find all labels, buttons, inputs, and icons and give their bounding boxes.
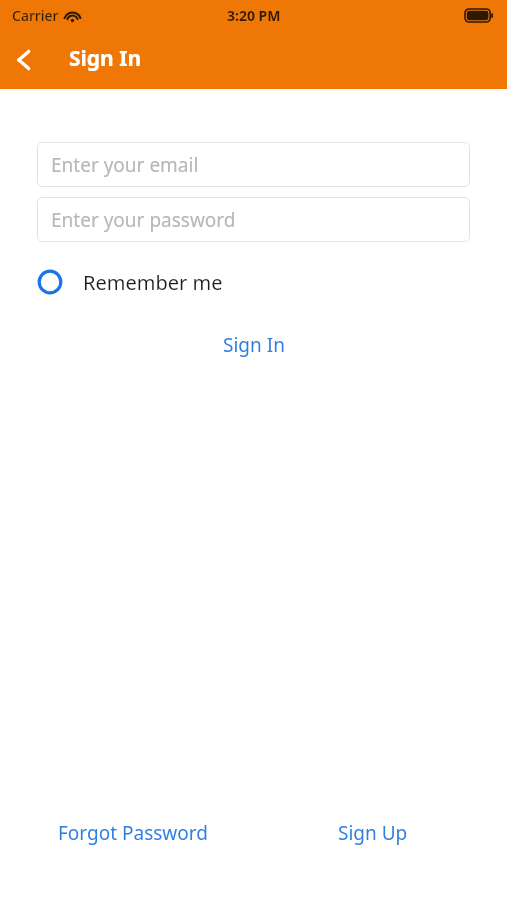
button[interactable]: Sign In (211, 328, 297, 362)
button[interactable]: Sign Up (326, 814, 420, 852)
staticText: 3:20 PM (227, 6, 281, 25)
button[interactable]: Enter your password (37, 197, 470, 242)
staticText: Enter your password (51, 207, 236, 233)
staticText: Enter your email (51, 152, 199, 178)
button[interactable]: Remember me (37, 260, 223, 304)
staticText: Sign In (223, 332, 285, 358)
staticText: Forgot Password (58, 820, 208, 846)
staticText: Sign In (69, 44, 142, 73)
button[interactable]: Enter your email (37, 142, 470, 187)
staticText: Carrier (12, 6, 59, 25)
staticText: Sign Up (338, 820, 408, 846)
button[interactable]: Back (0, 36, 48, 84)
staticText: Remember me (83, 269, 223, 296)
button[interactable]: Forgot Password (46, 814, 220, 852)
